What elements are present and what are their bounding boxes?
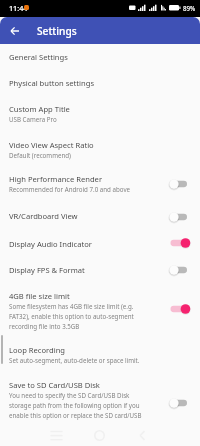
staticText: Save to SD Card/USB Disk [9,380,100,390]
button[interactable]: Display FPS & Format [0,257,200,283]
button[interactable]: Save to SD Card/USB Disk [167,395,193,411]
button[interactable]: Display Audio Indicator [167,235,193,251]
staticText: Recommended for Android 7.0 and above [9,185,131,193]
button[interactable]: Loop Recording [0,337,200,372]
staticText: General Settings [9,52,68,62]
staticText: 4GB file size limit [9,291,70,301]
staticText: Set auto-segment, auto-delete or space l… [9,356,140,364]
staticText: Display Audio Indicator [9,239,92,249]
staticText: 89% [183,4,196,12]
staticText: 11:44 [9,3,28,13]
button[interactable]: General Settings [0,44,200,70]
staticText: Some filesystem has 4GB file size limit … [9,302,148,331]
staticText: USB Camera Pro [9,115,57,123]
staticText: You need to specify the SD Card/USB Disk… [9,391,148,420]
staticText: Physical button settings [9,78,95,88]
staticText: High Performance Render [9,174,103,184]
button[interactable]: 4GB file size limit [167,301,193,317]
button[interactable]: High Performance Render [167,176,193,192]
button[interactable]: Display FPS & Format [167,262,193,278]
button[interactable]: Physical button settings [0,70,200,96]
staticText: Default (recommend) [9,151,71,159]
staticText: Display FPS & Format [9,265,85,275]
button[interactable]: Video View Aspect Ratio [0,132,200,166]
button[interactable]: High Performance Render [0,166,200,203]
button[interactable]: VR/Cardboard View [167,209,193,225]
staticText: VR/Cardboard View [9,211,78,221]
staticText: Video View Aspect Ratio [9,140,94,150]
button[interactable]: Back [6,22,24,40]
button[interactable]: VR/Cardboard View [0,203,200,231]
button[interactable]: Save to SD Card/USB Disk [0,372,200,425]
button[interactable]: 4GB file size limit [0,283,200,337]
button[interactable]: Custom App Title [0,96,200,132]
staticText: Settings [37,24,77,38]
staticText: Loop Recording [9,345,66,355]
button[interactable]: Display Audio Indicator [0,231,200,257]
staticText: Custom App Title [9,104,70,114]
